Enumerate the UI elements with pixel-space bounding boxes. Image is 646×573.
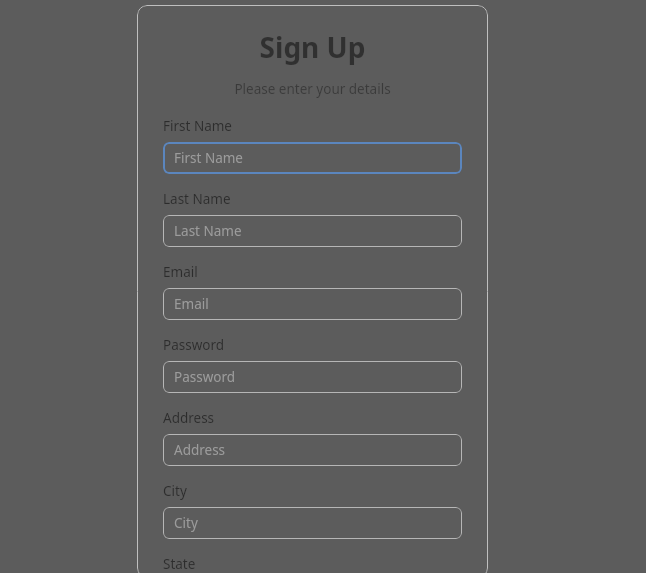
staticText: State xyxy=(163,555,196,573)
button[interactable]: Email xyxy=(163,288,462,320)
staticText: Address xyxy=(163,409,215,427)
staticText: City xyxy=(163,482,187,500)
staticText: First Name xyxy=(163,117,232,135)
staticText: Last Name xyxy=(174,222,242,240)
staticText: Password xyxy=(174,368,236,386)
button[interactable]: Last Name xyxy=(163,215,462,247)
staticText: Email xyxy=(174,295,209,313)
staticText: First Name xyxy=(174,149,243,167)
button[interactable]: City xyxy=(163,507,462,539)
button[interactable]: Address xyxy=(163,434,462,466)
staticText: Please enter your details xyxy=(163,80,462,98)
button[interactable]: First Name xyxy=(163,142,462,174)
staticText: Password xyxy=(163,336,225,354)
button[interactable]: Password xyxy=(163,361,462,393)
staticText: Sign Up xyxy=(163,28,462,66)
staticText: Address xyxy=(174,441,226,459)
staticText: City xyxy=(174,514,198,532)
staticText: Email xyxy=(163,263,198,281)
staticText: Last Name xyxy=(163,190,231,208)
